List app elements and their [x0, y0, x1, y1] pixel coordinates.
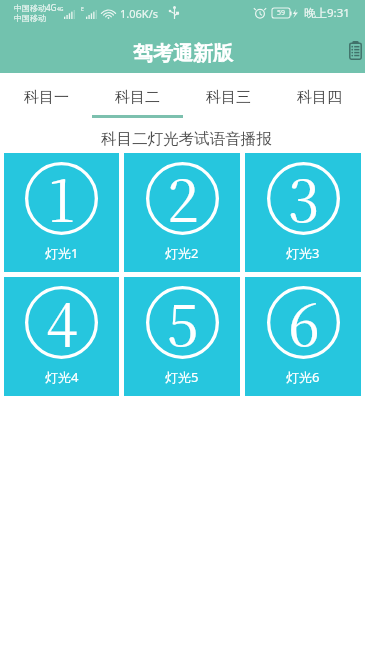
button[interactable]: 3	[245, 153, 361, 272]
staticText: 1.06K/s	[120, 6, 158, 21]
staticText: 晚上9:31	[304, 5, 350, 21]
button[interactable]: 科目一	[0, 73, 92, 119]
staticText: 驾考通新版	[133, 41, 233, 66]
staticText: 科目三	[206, 88, 251, 107]
button[interactable]: 4	[4, 277, 119, 396]
staticText: 5	[167, 280, 199, 353]
staticText: 科目二灯光考试语音播报	[4, 129, 365, 149]
staticText: 中国移动4G	[14, 2, 57, 13]
staticText: E	[81, 6, 84, 13]
staticText: 4G	[57, 6, 64, 13]
staticText: 59	[277, 8, 286, 18]
staticText: 灯光5	[165, 368, 199, 386]
staticText: 灯光4	[45, 368, 79, 386]
staticText: 2	[167, 156, 199, 229]
button[interactable]: 6	[245, 277, 361, 396]
staticText: 科目四	[297, 88, 342, 107]
button[interactable]: 1	[4, 153, 119, 272]
button[interactable]: 科目三	[183, 73, 274, 119]
staticText: 灯光1	[45, 244, 79, 262]
staticText: 灯光2	[165, 244, 199, 262]
staticText: 科目二	[115, 88, 160, 107]
staticText: 中国移动	[14, 13, 46, 23]
button[interactable]: Records	[344, 36, 365, 64]
staticText: 1	[48, 156, 75, 229]
staticText: 科目一	[24, 88, 69, 107]
button[interactable]: 5	[124, 277, 240, 396]
staticText: 6	[288, 280, 320, 353]
button[interactable]: 2	[124, 153, 240, 272]
staticText: 4	[46, 280, 78, 353]
staticText: 灯光3	[286, 244, 320, 262]
button[interactable]: 科目四	[274, 73, 365, 119]
staticText: 灯光6	[286, 368, 320, 386]
button[interactable]: 科目二	[92, 73, 183, 119]
staticText: 3	[288, 156, 320, 229]
